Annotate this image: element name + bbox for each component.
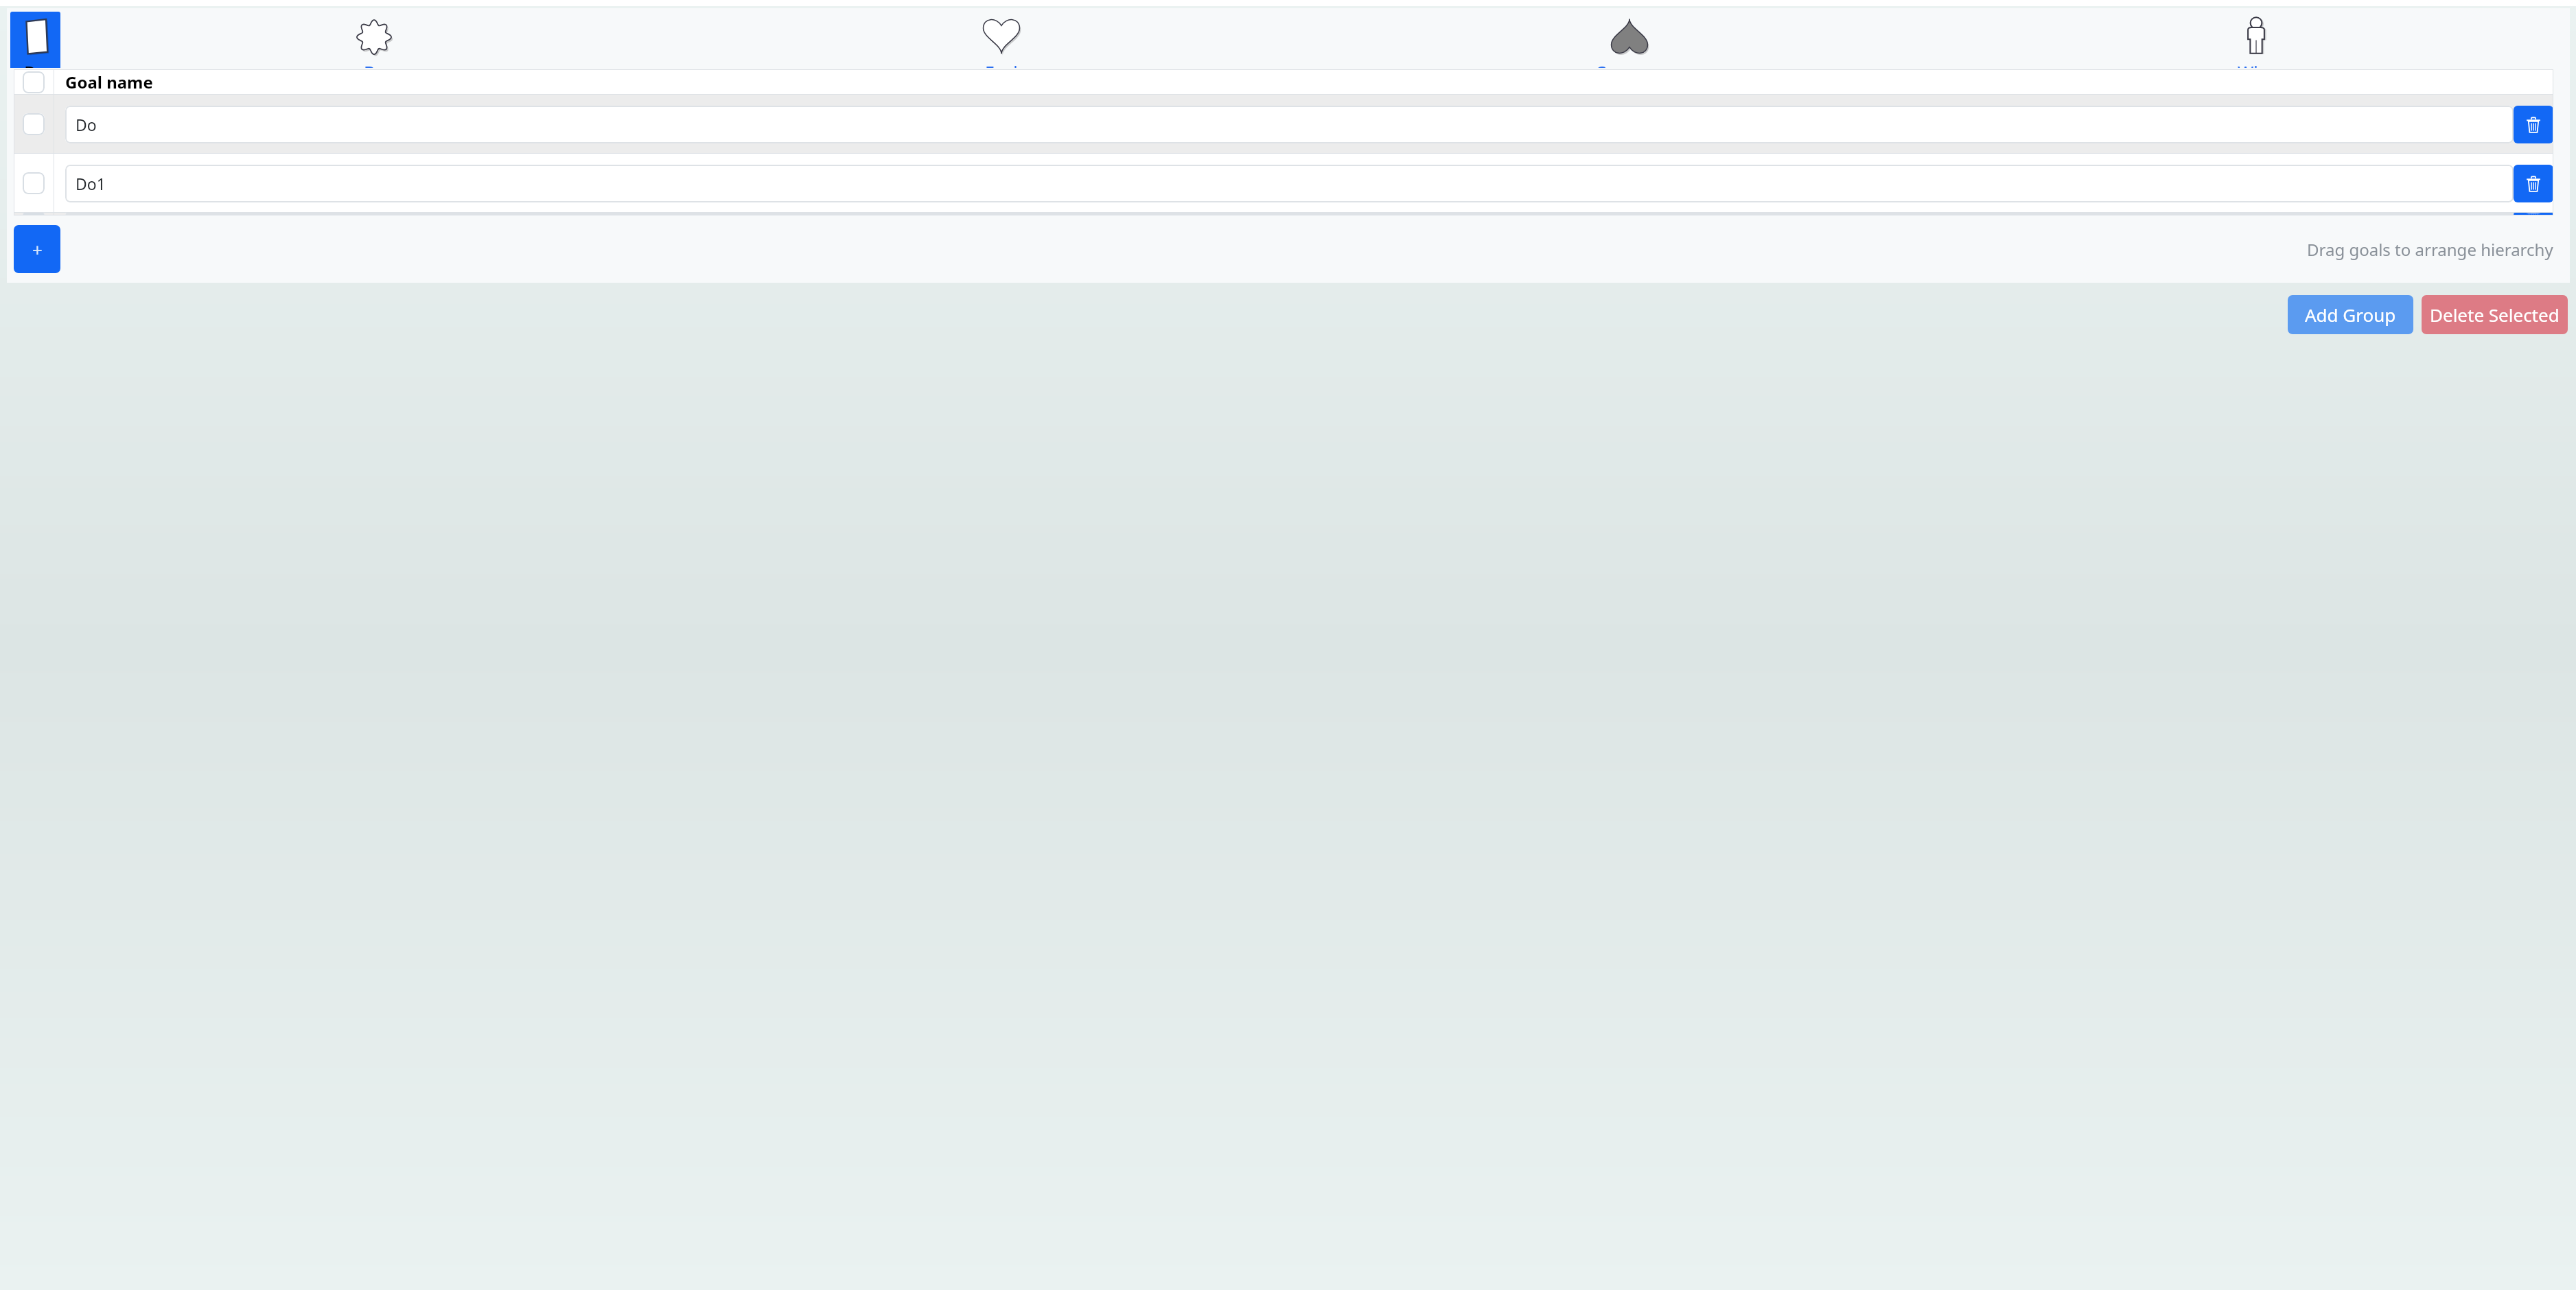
button[interactable]: Do1: [65, 165, 2514, 202]
button[interactable]: Select: [23, 213, 45, 215]
button[interactable]: Delete Do1: [2514, 165, 2553, 202]
button[interactable]: Do: [10, 12, 60, 68]
staticText: +: [32, 237, 43, 261]
button[interactable]: Select: [23, 172, 45, 194]
button[interactable]: Feel: [688, 8, 1315, 68]
staticText: Goal name: [65, 71, 153, 93]
button[interactable]: Select: [23, 71, 45, 93]
button[interactable]: Concern: [1315, 8, 1942, 68]
button[interactable]: Add Group: [2288, 295, 2413, 334]
staticText: Do: [24, 60, 47, 68]
staticText: Who: [2238, 60, 2275, 68]
button[interactable]: Who: [1942, 8, 2570, 68]
button[interactable]: Delete Do: [2514, 106, 2553, 143]
button[interactable]: Do: [65, 106, 2514, 143]
staticText: Do: [76, 114, 97, 135]
staticText: Be: [364, 60, 385, 68]
staticText: Drag goals to arrange hierarchy: [2307, 238, 2553, 261]
staticText: Add Group: [2305, 303, 2396, 327]
staticText: Do1: [76, 173, 106, 194]
staticText: Delete Selected: [2430, 303, 2560, 327]
button[interactable]: Be: [60, 8, 688, 68]
button[interactable]: Select: [23, 113, 45, 135]
staticText: Concern: [1595, 60, 1663, 68]
button[interactable]: Delete Selected: [2422, 295, 2568, 334]
button[interactable]: Delete Do2: [2514, 213, 2553, 215]
staticText: Feel: [985, 60, 1018, 68]
button[interactable]: Add goal: [14, 225, 60, 273]
